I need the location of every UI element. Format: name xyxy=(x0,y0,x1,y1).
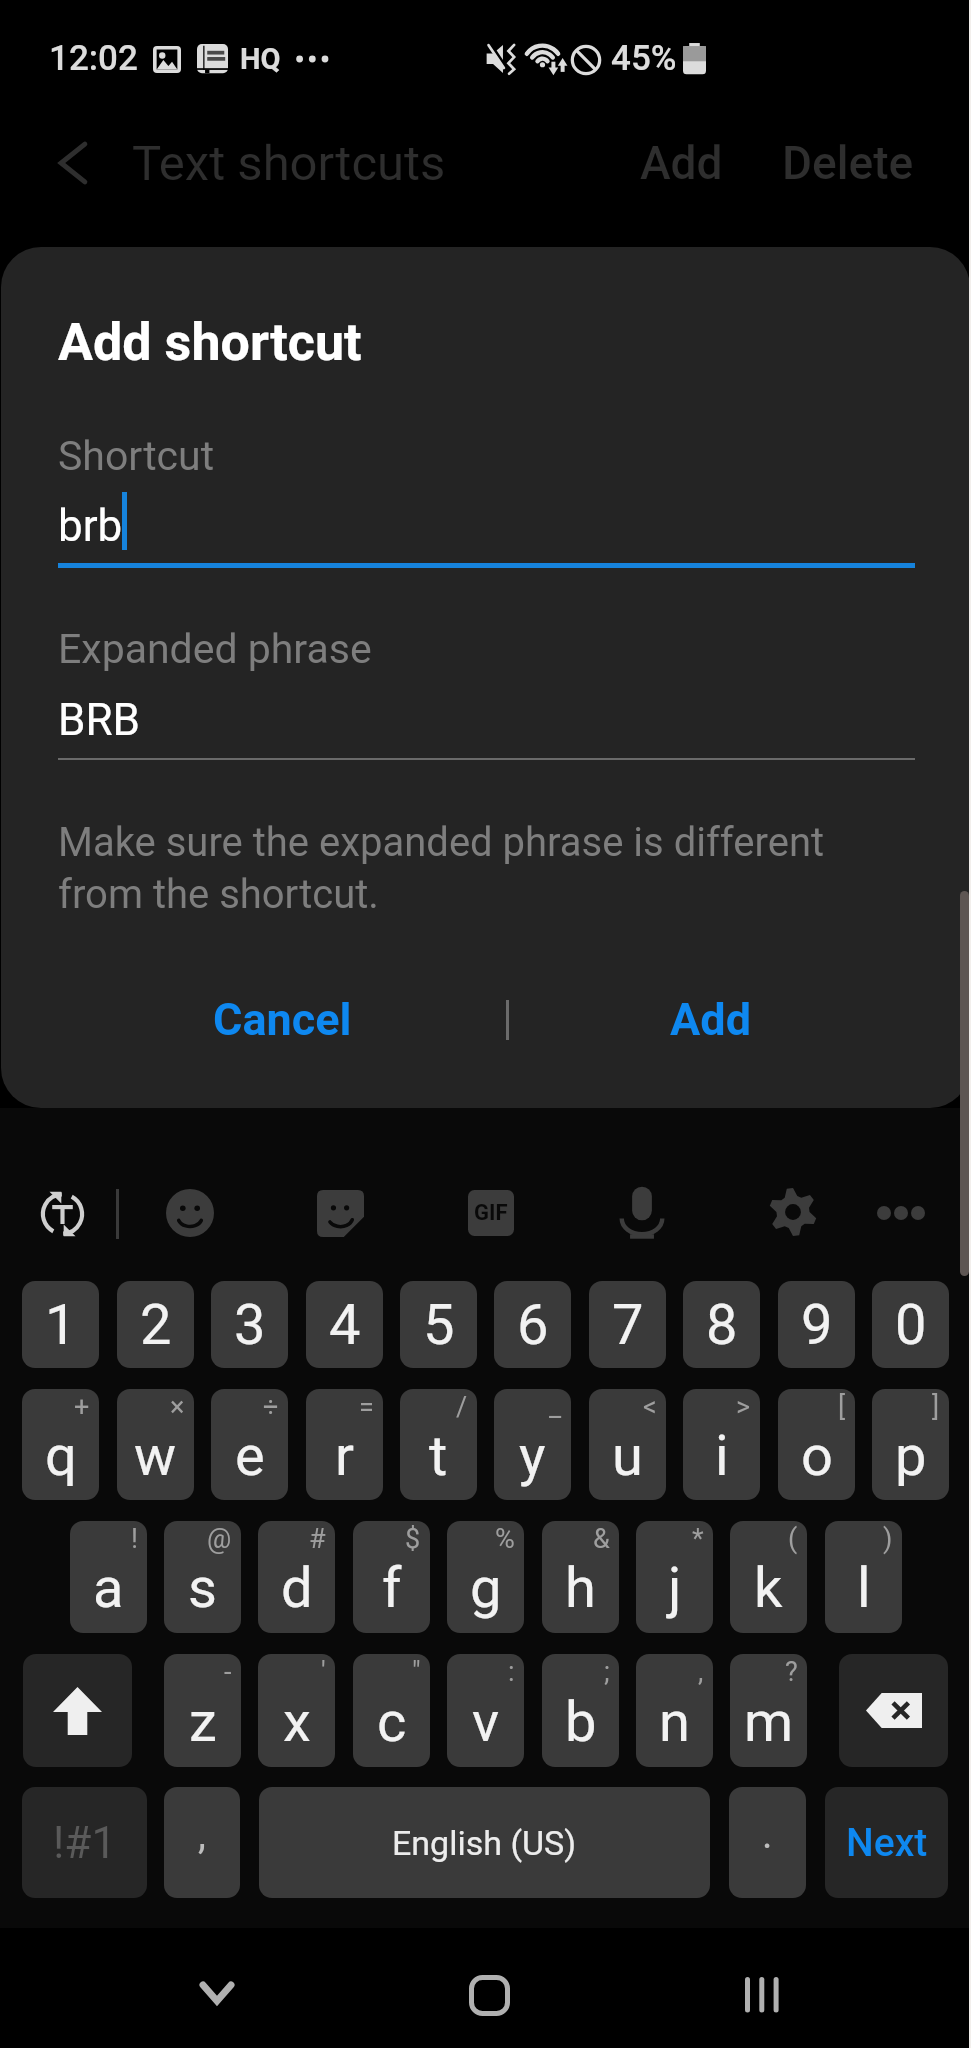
staticText: 5 xyxy=(423,1292,455,1358)
staticText: Expanded phrase xyxy=(58,625,372,673)
staticText: 12:02 xyxy=(49,38,138,79)
button[interactable]: - xyxy=(164,1654,241,1767)
button[interactable]: Shift xyxy=(23,1654,132,1767)
button[interactable]: . xyxy=(729,1787,806,1898)
staticText: 2 xyxy=(140,1292,172,1358)
staticText: : xyxy=(508,1656,515,1688)
staticText: - xyxy=(224,1656,232,1688)
staticText: ! xyxy=(131,1523,138,1555)
button[interactable]: & xyxy=(542,1521,619,1633)
button[interactable]: = xyxy=(306,1389,383,1500)
button[interactable]: GIF xyxy=(468,1190,514,1236)
staticText: Make sure the expanded phrase is differe… xyxy=(58,819,848,918)
button[interactable]: $ xyxy=(353,1521,430,1633)
staticText: , xyxy=(198,1811,206,1858)
staticText: 4 xyxy=(329,1292,361,1358)
button[interactable]: , xyxy=(164,1787,240,1898)
staticText: z xyxy=(189,1689,217,1755)
button[interactable]: Emoji xyxy=(166,1189,214,1237)
button[interactable]: ? xyxy=(730,1654,807,1767)
button[interactable]: < xyxy=(589,1389,666,1500)
button[interactable]: ) xyxy=(825,1521,902,1633)
button[interactable]: Add xyxy=(508,959,914,1079)
staticText: 9 xyxy=(801,1292,833,1358)
button[interactable]: Stickers xyxy=(317,1190,364,1237)
staticText: < xyxy=(643,1391,657,1423)
button[interactable]: 5 xyxy=(400,1281,477,1368)
staticText: % xyxy=(495,1523,515,1555)
staticText: * xyxy=(692,1523,704,1555)
staticText: d xyxy=(281,1555,313,1621)
button[interactable]: Add xyxy=(625,124,738,202)
button[interactable]: , xyxy=(636,1654,713,1767)
staticText: ] xyxy=(932,1391,940,1423)
button[interactable]: 4 xyxy=(306,1281,383,1368)
staticText: ÷ xyxy=(263,1391,279,1423)
button[interactable]: + xyxy=(22,1389,99,1500)
button[interactable]: @ xyxy=(164,1521,241,1633)
button[interactable]: # xyxy=(258,1521,335,1633)
button[interactable]: Voice input xyxy=(616,1185,668,1241)
button[interactable]: ! xyxy=(70,1521,147,1633)
staticText: 3 xyxy=(234,1292,266,1358)
staticText: 45% xyxy=(611,38,677,79)
button[interactable]: Keyboard settings xyxy=(769,1186,817,1238)
staticText: × xyxy=(170,1391,185,1423)
button[interactable]: Backspace xyxy=(839,1654,948,1767)
button[interactable]: * xyxy=(636,1521,713,1633)
staticText: brb xyxy=(58,500,123,552)
staticText: p xyxy=(895,1423,927,1489)
staticText: ? xyxy=(785,1656,798,1688)
button[interactable]: Navigate up xyxy=(36,120,110,206)
button[interactable]: : xyxy=(447,1654,524,1767)
button[interactable]: > xyxy=(683,1389,760,1500)
button[interactable]: 6 xyxy=(494,1281,571,1368)
staticText: Delete xyxy=(782,136,914,190)
staticText: Cancel xyxy=(213,993,352,1046)
staticText: s xyxy=(188,1555,217,1621)
button[interactable]: 1 xyxy=(22,1281,99,1368)
button[interactable]: Home xyxy=(429,1934,549,2048)
button[interactable]: [ xyxy=(778,1389,855,1500)
staticText: , xyxy=(698,1656,704,1688)
staticText: & xyxy=(593,1523,610,1555)
staticText: w xyxy=(134,1423,177,1489)
button[interactable]: ] xyxy=(872,1389,949,1500)
staticText: o xyxy=(801,1423,833,1489)
staticText: c xyxy=(377,1689,407,1755)
staticText: y xyxy=(519,1423,546,1489)
button[interactable]: Next xyxy=(825,1787,948,1898)
button[interactable]: 3 xyxy=(211,1281,288,1368)
button[interactable]: ; xyxy=(542,1654,619,1767)
staticText: > xyxy=(736,1391,751,1423)
button[interactable]: 7 xyxy=(589,1281,666,1368)
button[interactable]: × xyxy=(117,1389,194,1500)
button[interactable]: Hide keyboard xyxy=(157,1934,277,2048)
button[interactable]: 0 xyxy=(872,1281,949,1368)
staticText: 8 xyxy=(706,1292,738,1358)
button[interactable]: !#1 xyxy=(22,1787,147,1898)
button[interactable]: More options xyxy=(876,1196,926,1230)
staticText: u xyxy=(612,1423,643,1489)
staticText: ; xyxy=(604,1656,610,1688)
button[interactable]: Recent apps xyxy=(699,1934,819,2048)
staticText: $ xyxy=(405,1523,421,1555)
button[interactable]: / xyxy=(400,1389,477,1500)
button[interactable]: ÷ xyxy=(211,1389,288,1500)
button[interactable]: Delete xyxy=(768,124,928,202)
button[interactable]: 2 xyxy=(117,1281,194,1368)
button[interactable]: ( xyxy=(730,1521,807,1633)
staticText: 7 xyxy=(612,1292,644,1358)
button[interactable]: ' xyxy=(258,1654,335,1767)
staticText: Add shortcut xyxy=(58,312,362,373)
button[interactable]: Cancel xyxy=(57,959,507,1079)
button[interactable]: Translate xyxy=(38,1189,87,1239)
button[interactable]: % xyxy=(447,1521,524,1633)
staticText: Add xyxy=(670,993,752,1046)
button[interactable]: " xyxy=(353,1654,430,1767)
button[interactable]: 8 xyxy=(683,1281,760,1368)
staticText: 0 xyxy=(895,1292,927,1358)
button[interactable]: 9 xyxy=(778,1281,855,1368)
button[interactable]: English (US) xyxy=(259,1787,710,1898)
button[interactable]: _ xyxy=(494,1389,571,1500)
